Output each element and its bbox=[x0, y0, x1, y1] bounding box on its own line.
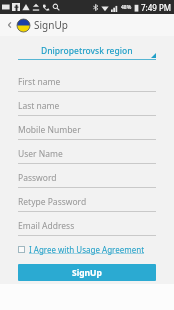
staticText: Retype Password bbox=[18, 196, 87, 208]
staticText: Password bbox=[18, 172, 57, 184]
button[interactable]: Mobile Number bbox=[18, 121, 156, 145]
staticText: Mobile Number bbox=[18, 124, 81, 136]
button[interactable]: Navigate up bbox=[3, 18, 17, 32]
staticText: SignUp bbox=[34, 18, 68, 32]
staticText: Email Address bbox=[18, 220, 75, 232]
button[interactable]: Password bbox=[18, 169, 156, 193]
staticText: First name bbox=[18, 76, 61, 88]
button[interactable]: I Agree with Usage Agreement bbox=[18, 244, 145, 255]
button[interactable]: Email Address bbox=[18, 217, 156, 241]
staticText: SignUp bbox=[72, 267, 102, 279]
staticText: I Agree with Usage Agreement bbox=[29, 244, 145, 255]
button[interactable]: User Name bbox=[18, 145, 156, 169]
button[interactable]: SignUp bbox=[18, 264, 156, 281]
button[interactable]: Last name bbox=[18, 97, 156, 121]
button[interactable]: Dnipropetrovsk region bbox=[18, 45, 156, 63]
button[interactable]: First name bbox=[18, 73, 156, 97]
staticText: Dnipropetrovsk region bbox=[41, 45, 133, 57]
staticText: User Name bbox=[18, 148, 63, 160]
staticText: 7:49 PM bbox=[141, 2, 172, 13]
staticText: 48% bbox=[121, 4, 132, 11]
button[interactable]: Retype Password bbox=[18, 193, 156, 217]
staticText: Last name bbox=[18, 100, 60, 112]
